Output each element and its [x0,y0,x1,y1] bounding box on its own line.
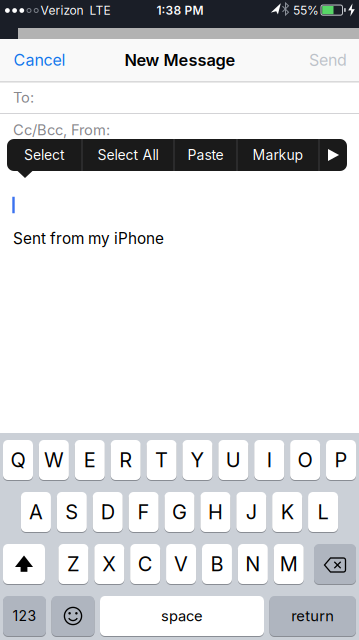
button[interactable]: O [290,439,320,480]
button[interactable]: Emoji [51,595,94,636]
button[interactable]: I [254,439,284,480]
button[interactable]: return [269,595,356,636]
button[interactable]: U [218,439,248,480]
button[interactable]: X [94,543,124,584]
staticText: Cancel [13,50,65,70]
staticText: 123 [12,607,36,624]
staticText: R [119,448,132,472]
button[interactable]: To: [0,82,359,113]
staticText: F [138,500,150,524]
button[interactable]: M [274,543,304,584]
button[interactable]: K [272,491,302,532]
button[interactable]: P [326,439,356,480]
staticText: LTE [89,3,110,18]
staticText: M [280,552,298,576]
staticText: space [161,607,203,625]
staticText: P [334,448,347,472]
staticText: New Message [124,50,235,70]
button[interactable]: D [93,491,123,532]
staticText: O [298,448,313,472]
staticText: Select [24,146,65,163]
button[interactable]: Shift [3,543,45,584]
staticText: Sent from my iPhone [13,229,164,248]
staticText: Y [190,448,204,472]
staticText: Send [309,50,347,70]
staticText: W [44,448,64,472]
button[interactable]: A [21,491,51,532]
staticText: C [138,552,153,576]
staticText: J [246,500,257,524]
staticText: N [245,552,260,576]
staticText: V [174,552,188,576]
button[interactable]: B [202,543,232,584]
staticText: Select All [97,146,158,163]
button[interactable]: E [75,439,105,480]
staticText: Verizon [40,3,83,18]
button[interactable]: N [238,543,268,584]
staticText: H [208,500,223,524]
button[interactable]: R [111,439,141,480]
staticText: E [84,448,96,472]
staticText: 1:38 PM [156,3,203,18]
button[interactable]: Delete [314,543,356,584]
button[interactable]: L [308,491,338,532]
button[interactable]: Select All [82,139,173,171]
staticText: K [281,500,294,524]
button[interactable]: Cancel [13,50,65,70]
button[interactable]: J [236,491,266,532]
button[interactable]: F [129,491,159,532]
button[interactable]: W [39,439,69,480]
staticText: Cc/Bcc, From: [13,121,110,139]
staticText: Paste [187,146,223,163]
staticText: return [291,607,334,625]
button[interactable]: S [57,491,87,532]
button[interactable]: C [130,543,160,584]
staticText: X [102,552,116,576]
button[interactable]: Select [7,139,81,171]
button[interactable]: Z [58,543,88,584]
button[interactable]: More items [319,139,346,171]
button[interactable]: Q [3,439,33,480]
staticText: I [267,448,272,472]
staticText: Z [67,552,80,576]
button[interactable]: Send [309,50,347,70]
button[interactable]: 123 [3,595,46,636]
button[interactable]: Cc/Bcc, From: [0,114,359,145]
button[interactable]: space [100,595,264,636]
button[interactable]: T [147,439,177,480]
button[interactable]: Y [182,439,212,480]
button[interactable]: G [164,491,194,532]
staticText: S [65,500,78,524]
staticText: Markup [252,146,303,163]
staticText: G [172,500,187,524]
staticText: 55% [293,3,319,18]
button[interactable]: V [166,543,196,584]
staticText: A [29,500,43,524]
staticText: U [226,448,241,472]
staticText: Q [10,448,25,472]
button[interactable]: Markup [237,139,318,171]
staticText: L [318,500,329,524]
staticText: D [101,500,115,524]
staticText: T [155,448,168,472]
button[interactable]: H [200,491,230,532]
staticText: B [210,552,223,576]
button[interactable]: Paste [174,139,236,171]
staticText: To: [13,89,34,106]
